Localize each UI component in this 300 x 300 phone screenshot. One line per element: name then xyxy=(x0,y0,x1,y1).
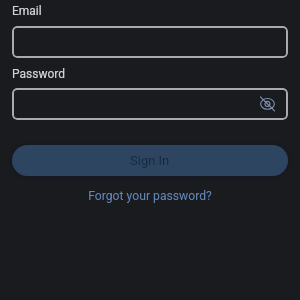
button[interactable]: Toggle password visibility xyxy=(12,88,288,120)
button[interactable] xyxy=(12,26,288,58)
button[interactable]: Forgot your password? xyxy=(88,189,212,203)
staticText: Password xyxy=(12,67,66,81)
button[interactable]: Toggle password visibility xyxy=(254,91,280,117)
staticText: Email xyxy=(12,4,42,18)
staticText: Sign In xyxy=(130,153,170,168)
button[interactable]: Sign In xyxy=(12,145,288,176)
